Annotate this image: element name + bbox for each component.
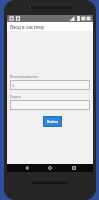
staticText: 2 <box>12 83 15 88</box>
staticText: Войти <box>47 119 58 124</box>
button[interactable]: Войти <box>43 116 62 127</box>
button[interactable]: 2 <box>10 80 90 90</box>
button[interactable]: Home <box>46 164 54 172</box>
button[interactable] <box>10 100 90 110</box>
staticText: Имя пользователя <box>10 75 39 79</box>
staticText: Пароль <box>10 95 22 99</box>
button[interactable]: Recent apps <box>70 164 78 172</box>
staticText: Вход в систему <box>10 24 45 30</box>
button[interactable]: Back <box>23 164 31 172</box>
